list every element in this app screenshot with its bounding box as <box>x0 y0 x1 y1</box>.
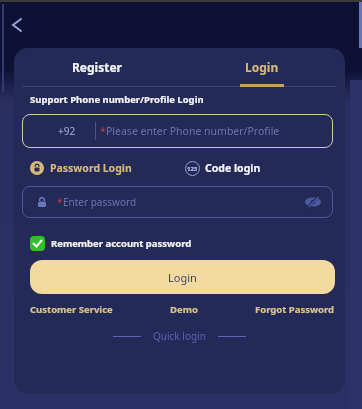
staticText: Support Phone number/Profile Login <box>30 93 204 106</box>
button[interactable]: Demo <box>170 303 198 316</box>
button[interactable]: Login <box>179 48 345 86</box>
staticText: Remember account password <box>51 237 192 250</box>
staticText: Login <box>245 59 279 75</box>
button[interactable]: Login <box>30 260 335 294</box>
staticText: 123 <box>187 165 198 173</box>
staticText: Code login <box>205 161 261 175</box>
button[interactable]: +92 <box>22 114 333 148</box>
staticText: Login <box>168 270 197 285</box>
staticText: +92 <box>58 124 76 138</box>
staticText: Forgot Password <box>255 303 335 316</box>
staticText: Demo <box>170 303 198 316</box>
staticText: Enter password <box>63 195 137 209</box>
staticText: Please enter Phone number/Profile <box>106 124 280 138</box>
button[interactable]: Forgot Password <box>255 303 335 316</box>
staticText: * <box>57 195 63 209</box>
button[interactable]: * <box>22 186 333 218</box>
staticText: Password Login <box>50 161 132 175</box>
staticText: Customer Service <box>30 303 113 316</box>
staticText: Register <box>72 59 122 75</box>
button[interactable]: Register <box>14 48 179 86</box>
button[interactable] <box>4 12 30 38</box>
staticText: Quick login <box>153 329 206 343</box>
button[interactable]: Remember account password <box>30 236 192 251</box>
button[interactable]: Password Login <box>50 161 132 175</box>
button[interactable]: 123 <box>185 158 261 178</box>
button[interactable] <box>304 193 322 211</box>
button[interactable]: Quick login <box>14 328 345 344</box>
staticText: * <box>100 124 106 138</box>
button[interactable]: Customer Service <box>30 303 113 316</box>
